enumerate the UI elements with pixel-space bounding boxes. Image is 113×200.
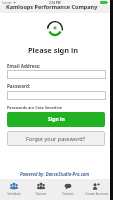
staticText: Kamloops Performance Company [6,3,98,10]
staticText: Contact [62,192,74,196]
button[interactable]: Forgot your password? [7,131,105,146]
staticText: Schedule [7,192,21,196]
button[interactable]: Schedule [0,179,27,200]
button[interactable]: Sign in [7,112,105,127]
button[interactable] [7,91,106,100]
button[interactable]: Create Account [82,179,110,200]
staticText: Please sign in [28,45,79,55]
button[interactable] [7,70,106,79]
staticText: Sign in [48,116,65,123]
staticText: Password: [7,83,31,89]
staticText: Forgot your password? [26,135,86,142]
button[interactable]: Classes [27,179,54,200]
staticText: Classes [35,192,47,196]
button[interactable]: Contact [54,179,82,200]
staticText: Create Account [85,192,108,196]
staticText: Carrier [2,1,12,5]
staticText: Powered by: DanceStudio-Pro.com [20,171,90,177]
staticText: Email Address: [7,63,41,69]
staticText: 2:14 PM [49,1,61,5]
staticText: Passwords are Case Sensitive [7,105,63,110]
